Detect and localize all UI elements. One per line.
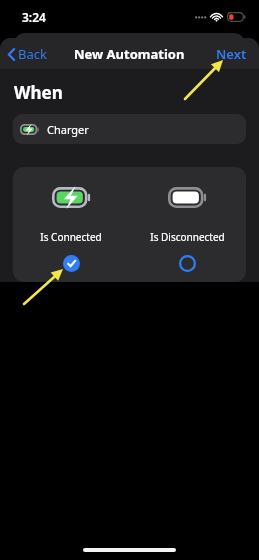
staticText: When: [14, 81, 63, 104]
staticText: Is Connected: [40, 230, 102, 244]
button[interactable]: Charger: [13, 114, 246, 144]
other: Is Disconnected: [179, 255, 196, 272]
staticText: 3:24: [22, 9, 46, 25]
button[interactable]: Back: [0, 40, 57, 68]
staticText: Is Disconnected: [150, 230, 225, 244]
button[interactable]: Is Disconnected: [129, 167, 246, 282]
button[interactable]: Is Connected: [13, 167, 129, 282]
other: Is Connected selected: [63, 255, 80, 272]
button[interactable]: Next: [204, 39, 259, 69]
staticText: Back: [18, 45, 47, 63]
staticText: New Automation: [74, 45, 185, 63]
staticText: Charger: [47, 122, 89, 137]
